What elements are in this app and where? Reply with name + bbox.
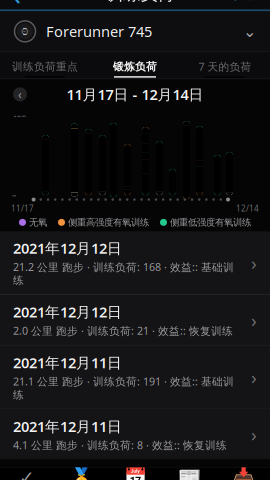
button[interactable]: 锻炼负荷 [90,53,180,78]
button[interactable]: 上一段时间 [0,86,28,102]
staticText: 11/17 [11,203,34,214]
staticText: 2021年12月11日 [13,353,122,372]
staticText: 📰 [177,467,200,480]
button[interactable]: 挑战 [54,462,108,480]
button[interactable]: 2021年12月12日 [0,295,270,345]
staticText: 425 [11,113,26,125]
staticText: 🏅 [69,467,92,480]
staticText: 2021年12月12日 [13,238,122,258]
staticText: 21.1 公里 跑步 · 训练负荷: 191 · 效益:: 基础训练 [13,374,234,401]
button[interactable]: 我的一天 [0,462,54,480]
button[interactable]: 7 天的负荷 [180,52,270,78]
staticText: › [251,307,257,332]
button[interactable]: ⌚︎ [0,11,270,51]
staticText: › [251,422,257,447]
staticText: ⌄ [243,22,256,40]
staticText: ‹ [18,86,22,102]
staticText: 7 天的负荷 [198,59,251,74]
button[interactable]: 2021年12月12日 [0,231,270,294]
staticText: ⌚︎ [19,24,30,39]
button[interactable]: 返回 [0,0,52,9]
staticText: 12/14 [236,203,259,214]
staticText: › [251,250,257,275]
staticText: 2.0 公里 跑步 · 训练负荷: 21 · 效益:: 恢复训练 [13,324,233,338]
button[interactable]: 帮助 [228,0,270,3]
button[interactable]: 日历 [108,462,162,480]
staticText: 2021年12月11日 [13,416,122,436]
button[interactable]: 通知 [216,462,270,480]
staticText: 无氧 [29,217,47,228]
staticText: 0 [11,187,16,199]
staticText: 21.2 公里 跑步 · 训练负荷: 168 · 效益:: 基础训练 [13,260,234,287]
staticText: 帮助 [228,0,258,3]
button[interactable]: 训练负荷重点 [0,53,90,78]
button[interactable]: 2021年12月11日 [0,409,270,459]
staticText: 2021年12月12日 [13,302,122,322]
staticText: 训练负荷重点 [12,60,78,73]
staticText: Forerunner 745 [46,22,152,41]
staticText: 侧重低强度有氧训练 [170,217,251,228]
button[interactable]: 2021年12月11日 [0,346,270,408]
staticText: 4.1 公里 跑步 · 训练负荷: 8 · 效益:: 恢复训练 [13,438,227,452]
staticText: ✓ [19,467,35,480]
staticText: 训练负荷 [106,0,174,4]
staticText: 11月17日 - 12月14日 [66,85,203,104]
staticText: 📅 [123,467,146,480]
staticText: 📥 [231,467,254,480]
button[interactable]: 新消息 [162,462,216,480]
staticText: › [251,365,257,389]
staticText: 侧重高强度有氧训练 [68,217,149,228]
staticText: ‹ [12,0,21,13]
staticText: 锻炼负荷 [113,60,157,73]
